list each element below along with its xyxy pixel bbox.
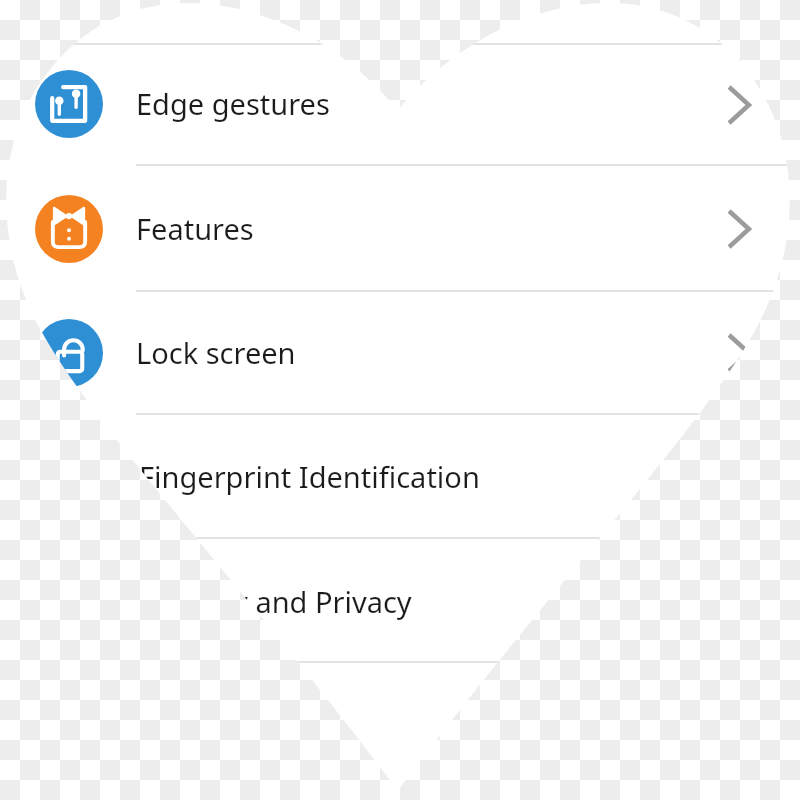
staticText: Edge gestures (136, 84, 330, 123)
button[interactable]: Lock screen (0, 291, 800, 414)
button[interactable]: Edge gestures (0, 44, 800, 165)
staticText: Fingerprint Identification (139, 457, 480, 496)
staticText: Features (136, 209, 254, 248)
button[interactable]: Fingerprint Identification (0, 414, 800, 538)
staticText: Security and Privacy (139, 582, 412, 621)
button[interactable]: Features (0, 165, 800, 291)
button[interactable]: Security and Privacy (0, 538, 800, 662)
staticText: Lock screen (136, 333, 296, 372)
